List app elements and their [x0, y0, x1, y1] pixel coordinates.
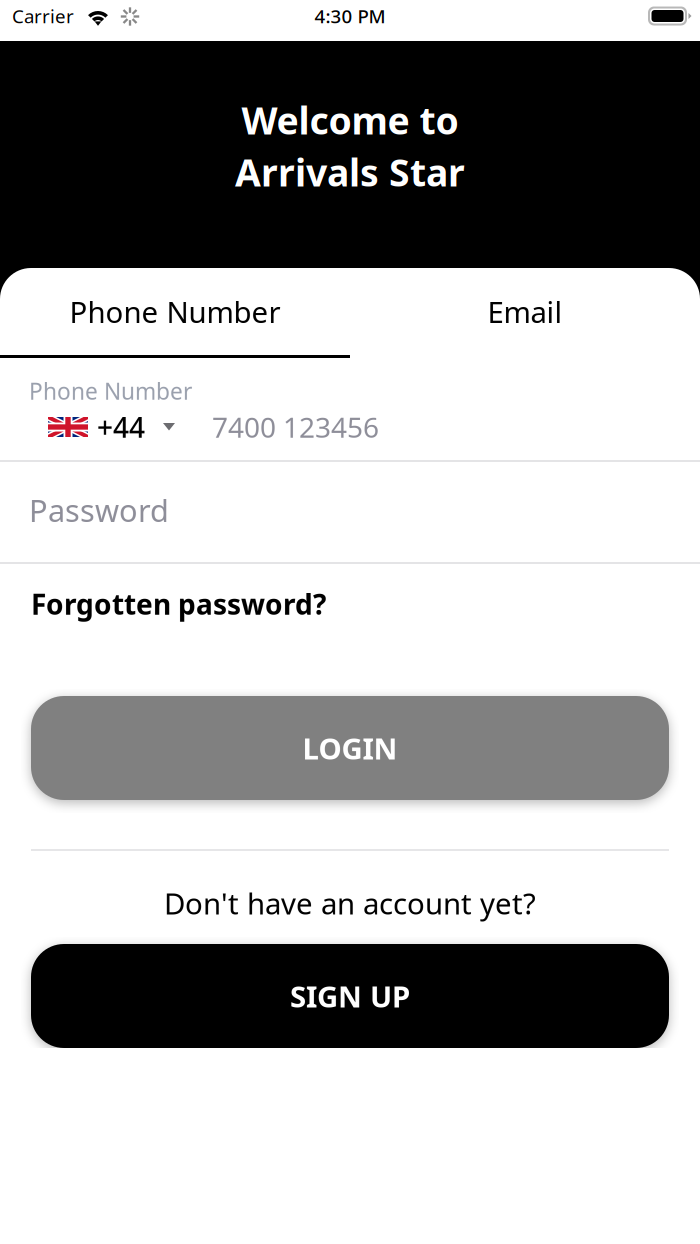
- button[interactable]: Password: [0, 462, 700, 562]
- staticText: Forgotten password?: [31, 585, 326, 623]
- staticText: Carrier: [12, 4, 74, 28]
- staticText: +44: [97, 408, 145, 446]
- staticText: Password: [29, 490, 169, 530]
- staticText: Phone Number: [29, 376, 192, 406]
- button[interactable]: SIGN UP: [31, 944, 669, 1048]
- staticText: Arrivals Star: [235, 147, 465, 197]
- staticText: 4:30 PM: [314, 4, 385, 28]
- button[interactable]: Forgotten password?: [0, 580, 326, 628]
- button[interactable]: Email: [350, 268, 700, 358]
- button[interactable]: 7400 123456: [175, 415, 700, 439]
- staticText: SIGN UP: [290, 976, 410, 1015]
- button[interactable]: Phone Number: [0, 268, 350, 358]
- staticText: LOGIN: [302, 728, 397, 767]
- button[interactable]: Country code, United Kingdom +44: [48, 415, 175, 439]
- staticText: Phone Number: [69, 292, 280, 331]
- staticText: Email: [487, 292, 562, 331]
- staticText: Don't have an account yet?: [164, 883, 536, 922]
- staticText: Welcome to: [241, 95, 458, 145]
- button[interactable]: LOGIN: [31, 696, 669, 800]
- staticText: 7400 123456: [212, 408, 379, 446]
